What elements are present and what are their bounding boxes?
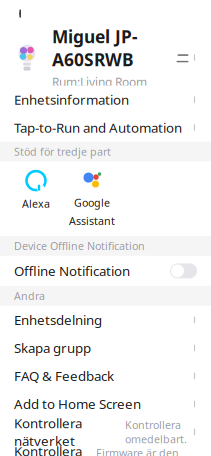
staticText: Firmware är den senaste versionen — [96, 446, 187, 456]
button[interactable]: FAQ & Feedback — [0, 362, 211, 390]
staticText: Add to Home Screen — [14, 395, 141, 413]
staticText: Stöd för tredje part — [14, 144, 111, 159]
staticText: Andra — [14, 289, 45, 303]
staticText: Enhetsdelning — [14, 311, 102, 329]
staticText: Offline Notification — [14, 262, 130, 280]
button[interactable]: Kontrollera firm… — [0, 446, 211, 456]
staticText: Kontrollera firm… — [14, 442, 82, 456]
staticText: Google — [74, 196, 110, 210]
button[interactable]: Offline Notification — [0, 256, 211, 286]
staticText: Kontrollera omedelbart. — [125, 418, 187, 446]
button[interactable]: Tap-to-Run and Automation — [0, 114, 211, 142]
staticText: Skapa grupp — [14, 339, 91, 357]
button[interactable]: Google — [64, 162, 120, 236]
button[interactable]: Enhetsdelning — [0, 306, 211, 334]
staticText: Assistant — [69, 214, 115, 228]
button[interactable]: Skapa grupp — [0, 334, 211, 362]
button[interactable]: Kontrollera nätverket — [0, 418, 211, 446]
staticText: FAQ & Feedback — [14, 367, 114, 385]
staticText: Enhetsinformation — [14, 91, 129, 108]
staticText: Alexa — [22, 197, 50, 211]
button[interactable]: Enhetsinformation — [0, 86, 211, 114]
staticText: Tap-to-Run and Automation — [14, 119, 182, 136]
staticText: Device Offline Notification — [14, 239, 145, 253]
staticText: Kontrollera nätverket — [14, 414, 82, 450]
staticText: Miguel JP-A60SRWB — [52, 25, 138, 71]
button[interactable]: Back — [4, 1, 38, 27]
button[interactable]: Alexa — [8, 162, 64, 219]
button[interactable]: Edit device name — [168, 41, 205, 75]
button[interactable]: Add to Home Screen — [0, 390, 211, 418]
staticText: Rum:Living Room — [52, 74, 147, 90]
